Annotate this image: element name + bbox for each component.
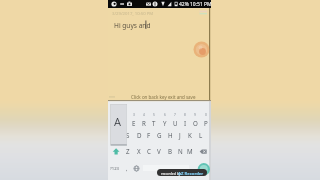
staticText: AZ Recorder xyxy=(178,171,204,177)
button[interactable]: 8 xyxy=(180,114,190,128)
staticText: Hi guys and xyxy=(114,21,151,30)
button[interactable]: Enter xyxy=(196,162,211,175)
staticText: 7 xyxy=(174,113,176,117)
staticText: 9 xyxy=(194,113,196,117)
button[interactable]: 2 xyxy=(118,114,128,128)
staticText: 4 xyxy=(143,113,145,117)
button[interactable]: 0 xyxy=(201,114,211,128)
staticText: 6 xyxy=(164,113,166,117)
button[interactable]: J xyxy=(175,128,185,142)
staticText: 8 xyxy=(184,113,186,117)
button[interactable]: 3 xyxy=(129,114,139,128)
staticText: H xyxy=(168,131,173,139)
staticText: R xyxy=(142,119,146,127)
staticText: C xyxy=(147,147,151,155)
staticText: S xyxy=(126,131,130,139)
staticText: recorded by xyxy=(161,171,181,176)
button[interactable]: B xyxy=(165,144,175,158)
button[interactable] xyxy=(157,169,207,176)
staticText: M xyxy=(187,147,193,155)
staticText: P xyxy=(204,119,208,127)
staticText: 0 xyxy=(205,113,207,117)
staticText: 10:51 PM xyxy=(190,1,212,8)
staticText: Y xyxy=(163,119,167,127)
staticText: Click on back key exit and save xyxy=(131,94,196,100)
staticText: B xyxy=(168,147,173,155)
button[interactable]: F xyxy=(144,128,154,142)
button[interactable]: L xyxy=(196,128,206,142)
staticText: L xyxy=(199,131,203,139)
staticText: I xyxy=(184,119,187,127)
staticText: G xyxy=(157,131,162,139)
staticText: T xyxy=(152,119,156,127)
button[interactable]: 6 xyxy=(160,114,170,128)
staticText: A xyxy=(114,114,122,129)
staticText: F xyxy=(147,131,151,139)
staticText: , xyxy=(126,165,128,172)
button[interactable]: X xyxy=(134,144,144,158)
staticText: 5 xyxy=(153,113,155,117)
button[interactable]: , xyxy=(122,162,131,175)
button[interactable]: Shift xyxy=(108,144,123,158)
button[interactable]: 1 xyxy=(108,114,118,128)
button[interactable]: 9 xyxy=(190,114,200,128)
staticText: ?123 xyxy=(110,166,120,172)
button[interactable]: Z xyxy=(123,144,133,158)
button[interactable]: S xyxy=(123,128,133,142)
staticText: Q xyxy=(111,119,116,127)
button[interactable]: H xyxy=(165,128,175,142)
button[interactable]: 7 xyxy=(170,114,180,128)
button[interactable]: N xyxy=(175,144,185,158)
staticText: 42% xyxy=(179,1,189,8)
button[interactable]: V xyxy=(154,144,164,158)
staticText: U xyxy=(173,119,178,127)
staticText: D xyxy=(137,131,142,139)
button[interactable]: M xyxy=(185,144,195,158)
button[interactable]: Space xyxy=(141,162,196,175)
button[interactable]: ?123 xyxy=(108,162,122,175)
staticText: V xyxy=(157,147,161,155)
staticText: X xyxy=(137,147,141,155)
button[interactable]: C xyxy=(144,144,154,158)
staticText: W xyxy=(120,119,126,127)
button[interactable]: D xyxy=(134,128,144,142)
button[interactable]: G xyxy=(154,128,164,142)
button[interactable]: 5 xyxy=(149,114,159,128)
staticText: 3 xyxy=(133,113,135,117)
staticText: Z xyxy=(126,147,130,155)
staticText: E xyxy=(132,119,136,127)
button[interactable]: K xyxy=(185,128,195,142)
staticText: J xyxy=(179,131,181,139)
staticText: 3/29/2017, 10:50 PM xyxy=(112,10,154,16)
staticText: K xyxy=(188,131,192,139)
staticText: N xyxy=(178,147,183,155)
staticText: O xyxy=(193,119,198,127)
button[interactable]: Backspace xyxy=(196,144,211,158)
button[interactable]: 4 xyxy=(139,114,149,128)
button[interactable]: Change language xyxy=(132,162,141,175)
